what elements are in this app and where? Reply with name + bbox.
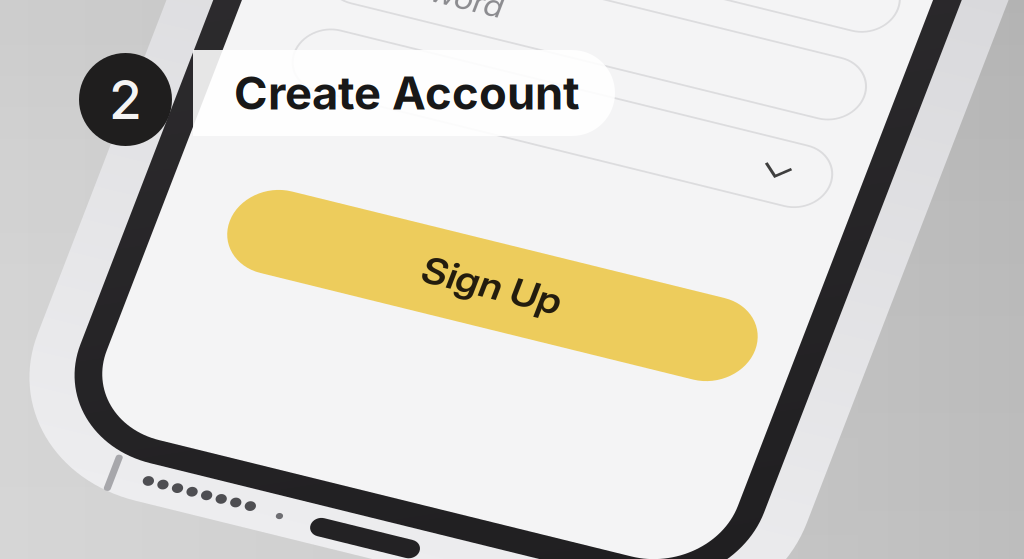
staticText: 2 bbox=[109, 67, 142, 132]
staticText: Create Account bbox=[234, 66, 580, 120]
